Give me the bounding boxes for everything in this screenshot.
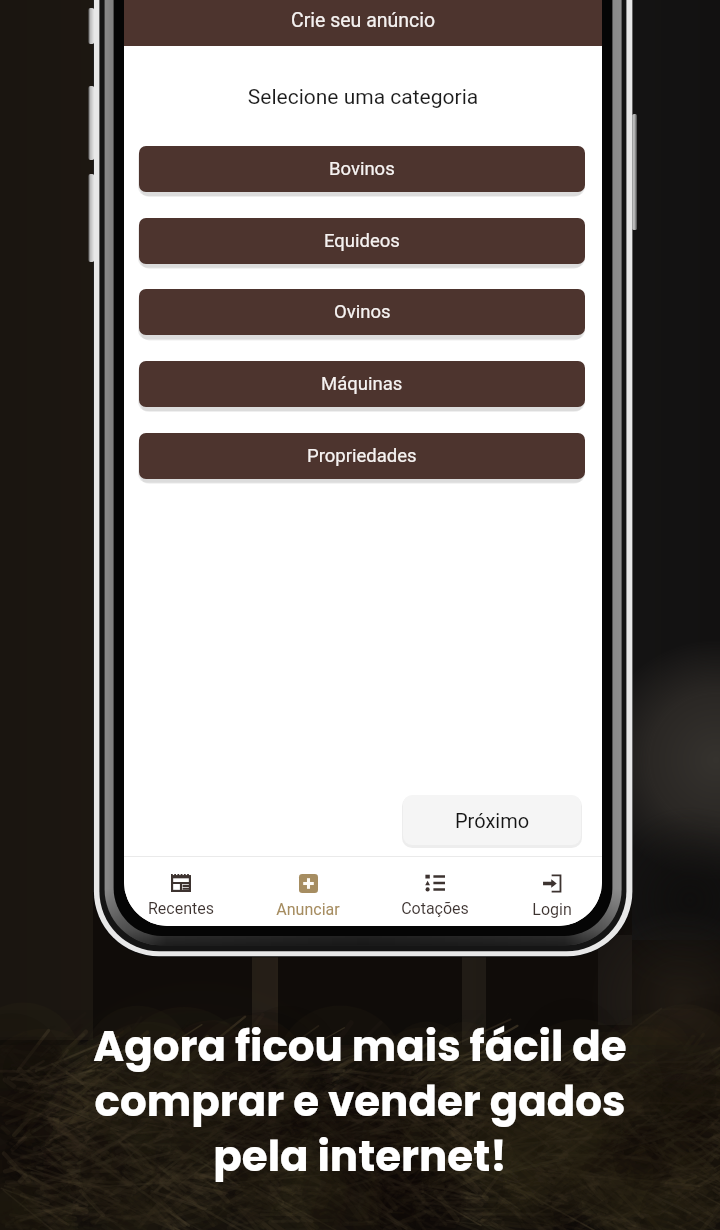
button[interactable]: Anunciar (253, 874, 363, 919)
button[interactable]: Propriedades (139, 433, 585, 479)
button[interactable]: Login (497, 874, 602, 919)
button[interactable]: Bovinos (139, 146, 585, 192)
staticText: Anunciar (253, 900, 363, 919)
other: Recentes (171, 874, 191, 892)
staticText: Próximo (455, 809, 530, 832)
button[interactable]: Equideos (139, 218, 585, 264)
staticText: Login (497, 900, 602, 919)
button[interactable]: Próximo (403, 795, 581, 845)
staticText: Equideos (324, 230, 400, 252)
staticText: Máquinas (321, 373, 403, 395)
button[interactable]: Cotações (380, 874, 490, 918)
staticText: Agora ficou mais fácil de comprar e vend… (93, 1017, 627, 1186)
staticText: Bovinos (329, 158, 395, 180)
other: Cotações (425, 874, 445, 892)
button[interactable]: Recentes (126, 874, 236, 918)
staticText: Crie seu anúncio (291, 9, 436, 32)
staticText: Ovinos (334, 301, 391, 323)
button[interactable]: Máquinas (139, 361, 585, 407)
button[interactable]: Ovinos (139, 289, 585, 335)
staticText: Propriedades (307, 445, 417, 467)
other: Anunciar (299, 874, 318, 893)
staticText: Selecione uma categoria (124, 85, 602, 110)
other: Login (542, 874, 563, 893)
staticText: Cotações (380, 899, 490, 918)
staticText: Recentes (126, 899, 236, 918)
